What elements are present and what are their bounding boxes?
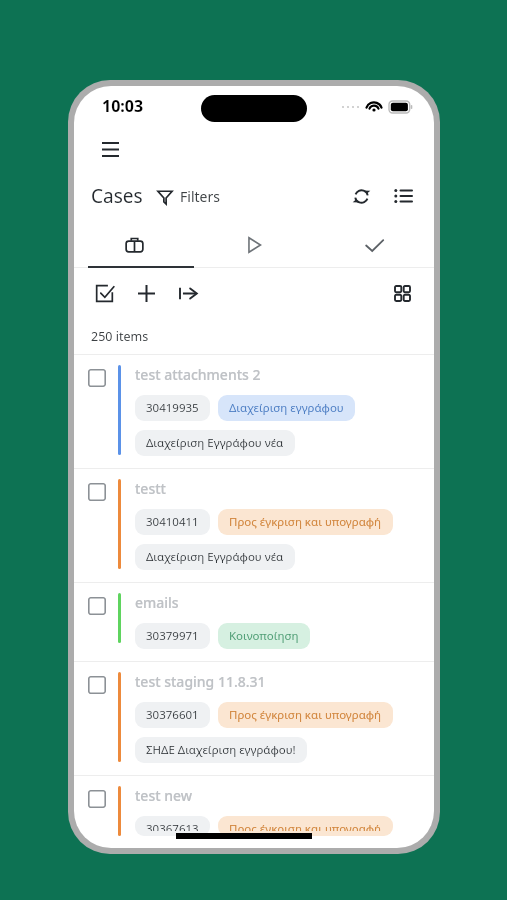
button[interactable]: Grid view [386, 277, 418, 309]
staticText: 30419935 [146, 400, 199, 416]
staticText: 30379971 [146, 628, 199, 644]
staticText: 10:03 [102, 95, 144, 117]
button[interactable]: Refresh [344, 179, 378, 213]
staticText: Διαχείριση Εγγράφου νέα [146, 549, 284, 565]
staticText: testt [135, 479, 166, 498]
button[interactable]: Select 30379971 [74, 583, 434, 661]
staticText: Προς έγκριση και υπογραφή [229, 707, 382, 723]
staticText: 30367613 [146, 821, 199, 831]
button[interactable]: Completed tab [314, 222, 434, 268]
button[interactable]: Select 30379971 [88, 597, 106, 615]
button[interactable]: Select [88, 277, 120, 309]
staticText: 30376601 [146, 707, 199, 723]
button[interactable]: Select 30410411 [88, 483, 106, 501]
button[interactable]: Select 30376601 [88, 676, 106, 694]
button[interactable]: Select 30367613 [88, 790, 106, 808]
button[interactable]: Select 30419935 [74, 355, 434, 468]
staticText: 30410411 [146, 514, 199, 530]
staticText: test new [135, 786, 193, 805]
staticText: Κοινοποίηση [229, 628, 299, 644]
button[interactable]: Cases tab [74, 222, 194, 268]
button[interactable]: Menu [94, 133, 126, 165]
button[interactable]: Select 30410411 [74, 469, 434, 582]
button[interactable]: Filters [155, 185, 222, 208]
button[interactable]: In progress tab [194, 222, 314, 268]
staticText: Διαχείριση Εγγράφου νέα [146, 435, 284, 451]
staticText: test attachments 2 [135, 365, 261, 384]
button[interactable]: List view [386, 179, 420, 213]
staticText: Διαχείριση εγγράφου [229, 400, 344, 416]
staticText: Cases [91, 183, 143, 209]
staticText: emails [135, 593, 179, 612]
button[interactable]: Add [130, 277, 162, 309]
button[interactable]: Select 30419935 [88, 369, 106, 387]
staticText: Προς έγκριση και υπογραφή [229, 821, 382, 831]
button[interactable]: Select 30376601 [74, 662, 434, 775]
staticText: Filters [180, 187, 220, 206]
staticText: 250 items [91, 328, 149, 345]
staticText: test staging 11.8.31 [135, 672, 266, 691]
button[interactable]: Select 30367613 [74, 776, 434, 848]
staticText: ΣΗΔΕ Διαχείριση εγγράφου! [146, 742, 296, 758]
button[interactable]: Export [172, 277, 204, 309]
staticText: Προς έγκριση και υπογραφή [229, 514, 382, 530]
